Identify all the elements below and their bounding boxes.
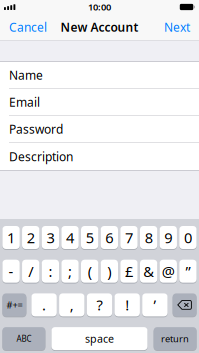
- button[interactable]: Name: [0, 62, 199, 89]
- staticText: New Account: [60, 19, 138, 35]
- staticText: 8: [145, 228, 153, 247]
- button[interactable]: @: [160, 260, 177, 283]
- staticText: space: [85, 331, 114, 346]
- staticText: 7: [125, 228, 133, 247]
- staticText: /: [28, 261, 33, 281]
- button[interactable]: 7: [120, 226, 138, 249]
- staticText: 9: [164, 228, 172, 247]
- button[interactable]: ;: [61, 260, 79, 283]
- staticText: ;: [68, 261, 72, 281]
- button[interactable]: Password: [0, 116, 199, 143]
- staticText: ,: [70, 295, 74, 315]
- button[interactable]: 8: [140, 226, 157, 249]
- staticText: ”: [185, 261, 190, 281]
- staticText: (: [88, 261, 92, 281]
- button[interactable]: #+=: [2, 293, 26, 316]
- staticText: ?: [96, 295, 102, 315]
- staticText: Next: [164, 19, 190, 35]
- button[interactable]: 0: [179, 226, 197, 249]
- button[interactable]: ’: [142, 293, 168, 316]
- staticText: 3: [46, 228, 54, 247]
- button[interactable]: ?: [87, 293, 112, 316]
- staticText: 4: [66, 228, 74, 247]
- button[interactable]: Delete: [173, 293, 197, 316]
- button[interactable]: 3: [42, 226, 59, 249]
- button[interactable]: ): [101, 260, 118, 283]
- button[interactable]: Email: [0, 89, 199, 116]
- staticText: 5: [86, 228, 94, 247]
- button[interactable]: Next: [155, 14, 199, 40]
- button[interactable]: Description: [0, 143, 199, 170]
- staticText: !: [125, 295, 129, 315]
- button[interactable]: 2: [22, 226, 39, 249]
- staticText: @: [162, 261, 175, 281]
- staticText: 6: [105, 228, 113, 247]
- staticText: .: [42, 295, 46, 315]
- staticText: ’: [153, 295, 156, 315]
- staticText: ABC: [16, 333, 31, 344]
- button[interactable]: :: [42, 260, 59, 283]
- staticText: 0: [184, 228, 192, 247]
- button[interactable]: 9: [160, 226, 177, 249]
- staticText: Name: [9, 67, 43, 83]
- staticText: £: [125, 261, 133, 281]
- staticText: -: [9, 261, 14, 281]
- button[interactable]: ,: [59, 293, 84, 316]
- button[interactable]: 4: [61, 226, 79, 249]
- button[interactable]: !: [114, 293, 140, 316]
- button[interactable]: &: [140, 260, 157, 283]
- button[interactable]: £: [120, 260, 138, 283]
- button[interactable]: 6: [101, 226, 118, 249]
- staticText: Cancel: [9, 19, 47, 35]
- staticText: 1: [7, 228, 15, 247]
- staticText: return: [161, 332, 189, 345]
- staticText: 2: [27, 228, 35, 247]
- staticText: Email: [9, 94, 40, 110]
- button[interactable]: -: [2, 260, 20, 283]
- staticText: #+=: [6, 299, 22, 311]
- button[interactable]: ”: [179, 260, 197, 283]
- button[interactable]: space: [51, 327, 147, 350]
- button[interactable]: .: [31, 293, 57, 316]
- button[interactable]: Cancel: [0, 14, 56, 40]
- button[interactable]: /: [22, 260, 39, 283]
- staticText: ): [107, 261, 111, 281]
- button[interactable]: 5: [81, 226, 98, 249]
- staticText: Description: [9, 148, 73, 164]
- staticText: 10:00: [88, 1, 111, 13]
- button[interactable]: (: [81, 260, 98, 283]
- staticText: Password: [9, 121, 63, 137]
- button[interactable]: 1: [2, 226, 20, 249]
- staticText: :: [48, 261, 52, 281]
- button[interactable]: return: [154, 327, 197, 350]
- button[interactable]: ABC: [2, 327, 45, 350]
- staticText: &: [143, 261, 154, 281]
